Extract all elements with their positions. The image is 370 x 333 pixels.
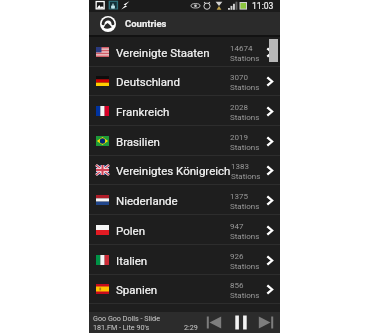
staticText: Goo Goo Dolls - Slide	[93, 314, 160, 322]
button[interactable]: Italien	[89, 245, 280, 275]
button[interactable]: Open Vereinigte Staaten	[261, 40, 280, 64]
button[interactable]: Open Spanien	[261, 277, 280, 301]
staticText: 926	[230, 252, 244, 261]
button[interactable]: Open Brasilien	[261, 129, 280, 153]
staticText: Stations	[230, 83, 260, 92]
button[interactable]: Open Deutschland	[261, 69, 280, 93]
button[interactable]: Open Polen	[261, 218, 280, 242]
button[interactable]: Previous	[202, 312, 226, 333]
staticText: Stations	[230, 113, 260, 122]
button[interactable]: Vereinigtes Königreich	[89, 155, 280, 185]
button[interactable]: Pause	[229, 312, 253, 333]
staticText: 2028	[230, 103, 248, 112]
button[interactable]: Brasilien	[89, 126, 280, 156]
staticText: 1383	[231, 162, 249, 171]
staticText: 856	[230, 281, 244, 290]
staticText: 14674	[230, 44, 253, 53]
staticText: Stations	[230, 54, 260, 63]
button[interactable]: Spanien	[89, 274, 280, 304]
staticText: 947	[230, 222, 244, 231]
staticText: 181.FM - Lite 90's	[93, 323, 150, 331]
button[interactable]: Polen	[89, 215, 280, 245]
staticText: Niederlande	[116, 194, 178, 207]
staticText: Polen	[116, 224, 145, 237]
staticText: 1375	[230, 192, 248, 201]
staticText: Spanien	[116, 283, 158, 296]
staticText: Stations	[231, 172, 261, 181]
button[interactable]: Open Niederlande	[261, 188, 280, 212]
staticText: 2:29	[184, 323, 198, 331]
button[interactable]: Open Italien	[261, 248, 280, 272]
button[interactable]: Open Frankreich	[261, 99, 280, 123]
button[interactable]: Next	[254, 312, 278, 333]
staticText: 3070	[230, 73, 248, 82]
staticText: Stations	[230, 202, 260, 211]
staticText: Stations	[230, 232, 260, 241]
staticText: Deutschland	[116, 75, 180, 88]
button[interactable]: Open Vereinigtes Königreich	[262, 158, 280, 182]
staticText: Vereinigte Staaten	[116, 46, 210, 59]
staticText: Italien	[116, 254, 148, 267]
staticText: Vereinigtes Königreich	[116, 164, 231, 177]
staticText: Brasilien	[116, 135, 160, 148]
staticText: 11:03	[252, 1, 274, 11]
staticText: Stations	[230, 143, 260, 152]
staticText: Stations	[230, 262, 260, 271]
button[interactable]: App logo	[89, 12, 115, 35]
button[interactable]: Vereinigte Staaten	[89, 37, 280, 67]
staticText: Frankreich	[116, 105, 170, 118]
button[interactable]: Frankreich	[89, 96, 280, 126]
button[interactable]: Deutschland	[89, 66, 280, 96]
staticText: Stations	[230, 291, 260, 300]
button[interactable]: Niederlande	[89, 185, 280, 215]
staticText: 2019	[230, 133, 248, 142]
staticText: Countries	[125, 18, 167, 29]
